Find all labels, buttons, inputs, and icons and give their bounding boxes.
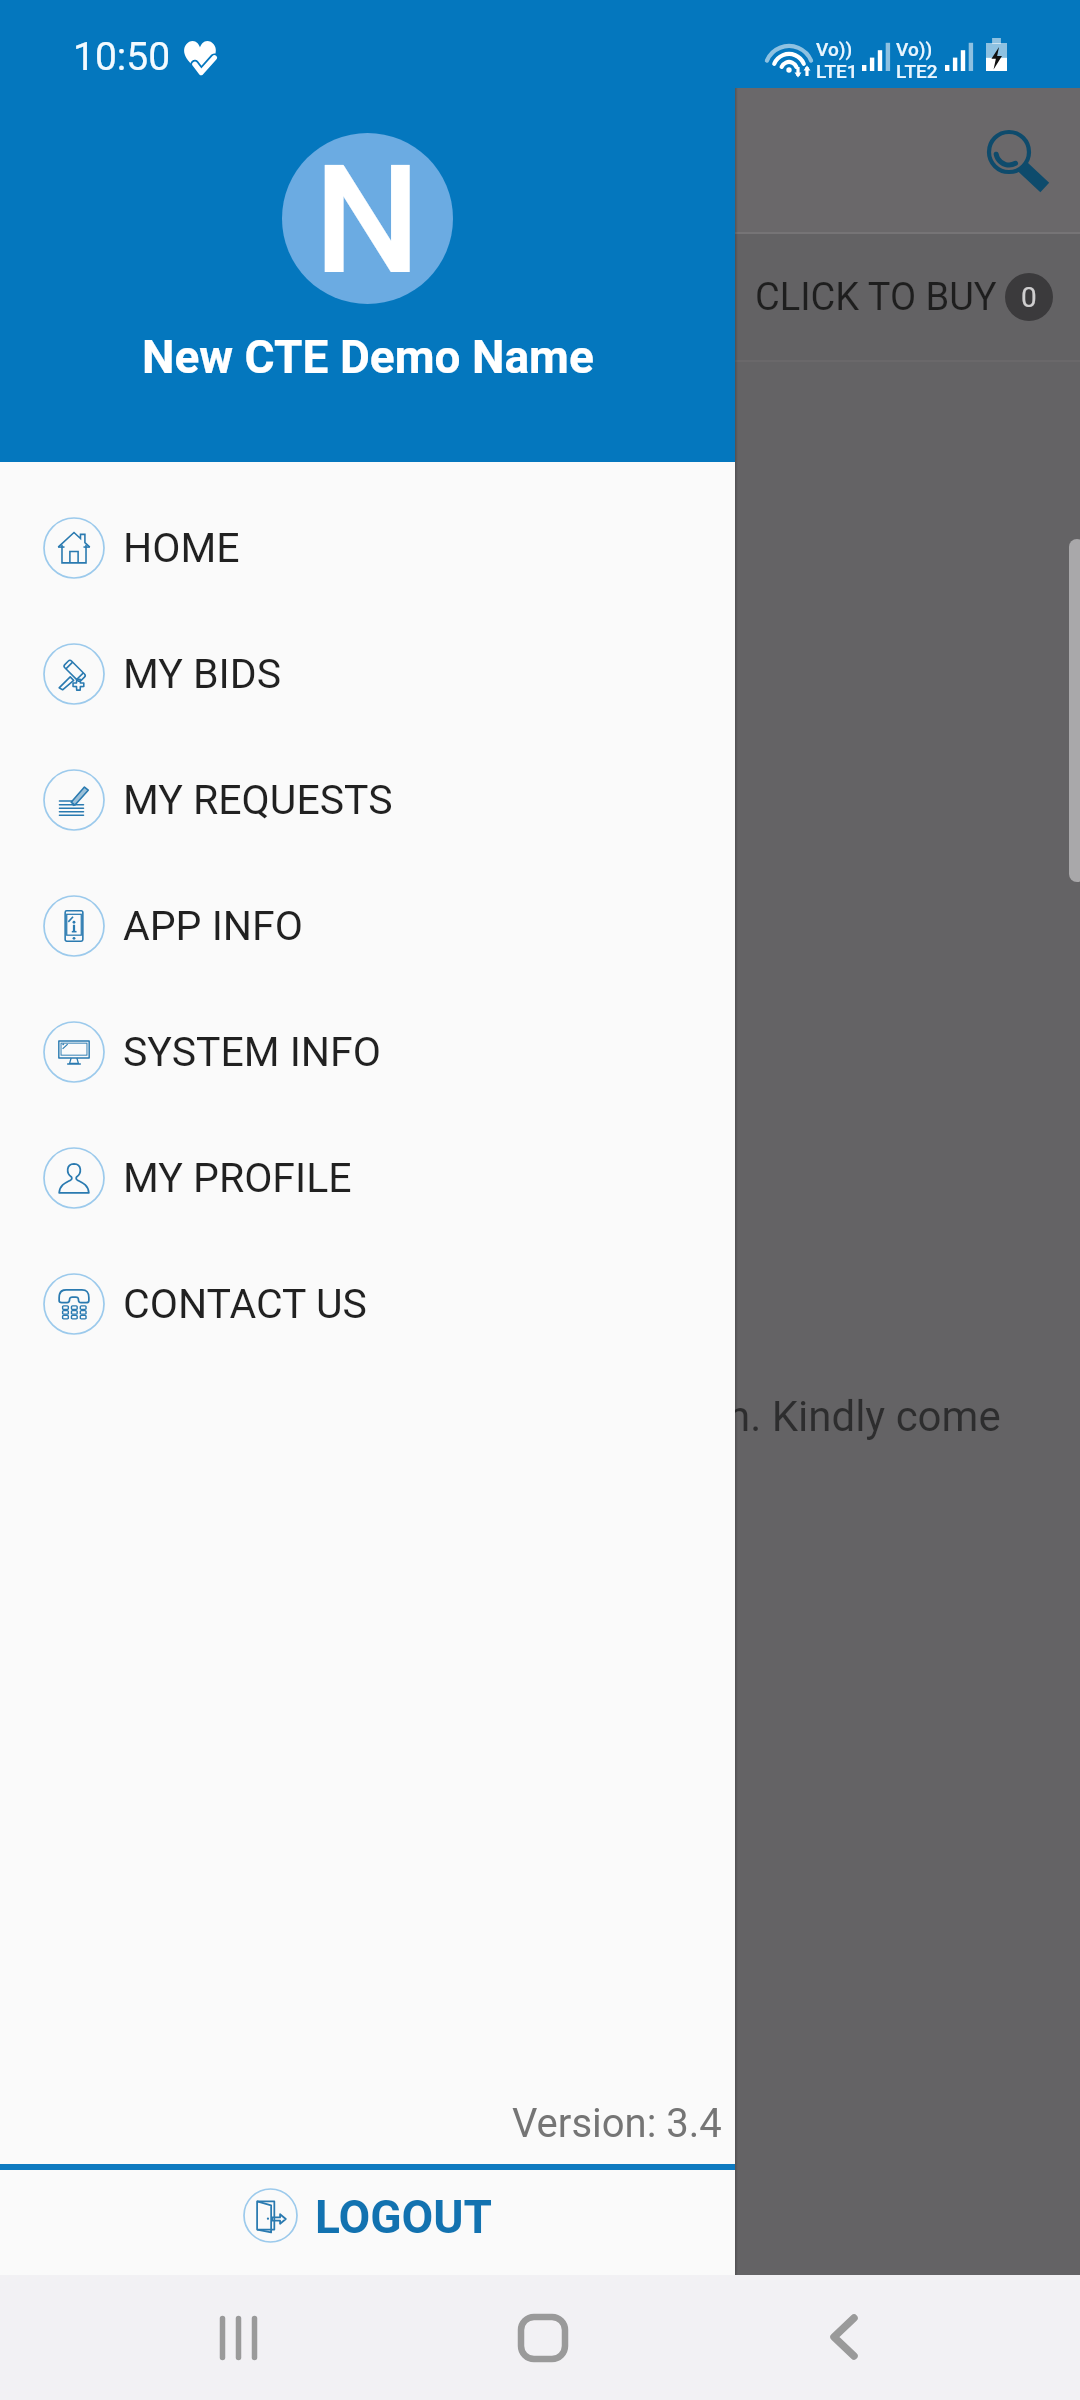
button[interactable]: CLICK TO BUY (735, 234, 1080, 360)
staticText: 0 (1021, 281, 1037, 314)
button[interactable]: Recent apps (160, 2275, 320, 2400)
staticText: APP INFO (123, 902, 303, 950)
staticText: MY REQUESTS (123, 776, 393, 824)
staticText: New CTE Demo Name (142, 330, 594, 384)
button[interactable]: MY PROFILE (0, 1115, 735, 1241)
staticText: CONTACT US (123, 1280, 367, 1328)
button[interactable]: APP INFO (0, 863, 735, 989)
staticText: MY PROFILE (123, 1154, 352, 1202)
staticText: n. Kindly come (727, 1392, 1001, 1441)
staticText: Version: 3.4 (512, 2100, 722, 2147)
staticText: Vo)) (816, 38, 853, 60)
staticText: LTE1 (816, 60, 858, 82)
button[interactable]: HOME (0, 485, 735, 611)
button[interactable]: MY REQUESTS (0, 737, 735, 863)
staticText: HOME (123, 524, 240, 572)
button[interactable]: CONTACT US (0, 1241, 735, 1367)
staticText: SYSTEM INFO (123, 1028, 381, 1076)
button[interactable]: MY BIDS (0, 611, 735, 737)
button[interactable]: Search (958, 100, 1068, 210)
button[interactable]: SYSTEM INFO (0, 989, 735, 1115)
staticText: N (314, 133, 421, 304)
button[interactable]: LOGOUT (243, 2166, 495, 2267)
staticText: LTE2 (896, 60, 938, 82)
staticText: LOGOUT (315, 2190, 493, 2244)
button[interactable]: Home (463, 2275, 623, 2400)
button[interactable]: Back (765, 2275, 925, 2400)
staticText: MY BIDS (123, 650, 281, 698)
staticText: 10:50 (73, 34, 171, 80)
staticText: Vo)) (896, 38, 933, 60)
staticText: CLICK TO BUY (755, 275, 997, 320)
